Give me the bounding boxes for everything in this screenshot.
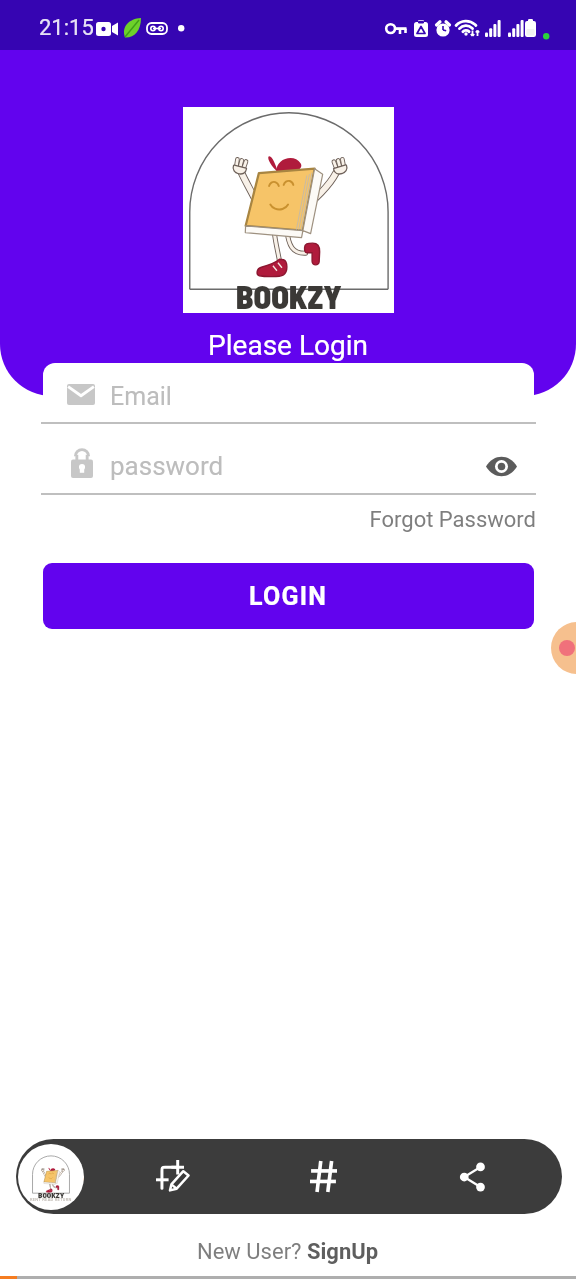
staticText: Email bbox=[110, 382, 172, 411]
staticText: password bbox=[110, 451, 224, 481]
staticText: Please Login bbox=[0, 329, 576, 362]
staticText: LOGIN bbox=[249, 582, 328, 611]
button[interactable]: Forgot Password bbox=[340, 507, 536, 539]
button[interactable]: Assistant bubble bbox=[551, 622, 576, 674]
button[interactable]: Hashtags bbox=[289, 1139, 357, 1214]
staticText: SignUp bbox=[307, 1239, 379, 1265]
staticText: BOOKZY bbox=[236, 277, 342, 315]
button[interactable]: Share bbox=[438, 1139, 506, 1214]
button[interactable]: LOGIN bbox=[43, 563, 534, 629]
staticText: 21:15 bbox=[39, 15, 94, 41]
button[interactable]: SignUp bbox=[307, 1239, 379, 1265]
staticText: Forgot Password bbox=[340, 507, 536, 533]
staticText: BOOKZY bbox=[38, 1190, 65, 1200]
button[interactable]: Profile bbox=[18, 1144, 84, 1210]
button[interactable]: Email bbox=[43, 372, 534, 422]
staticText: New User? bbox=[197, 1239, 307, 1265]
staticText: RENT READ RETURN bbox=[30, 1197, 72, 1202]
button[interactable]: Show password bbox=[480, 445, 522, 487]
button[interactable]: password bbox=[43, 443, 534, 493]
button[interactable]: Create post bbox=[139, 1139, 207, 1214]
